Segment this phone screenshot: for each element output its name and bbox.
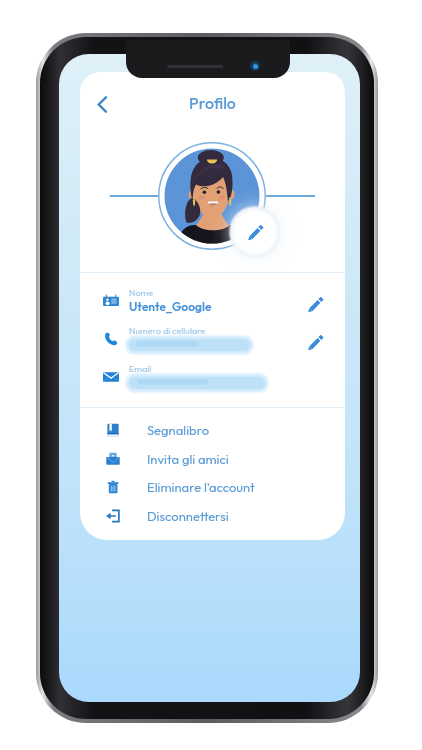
button[interactable]: Numero di cellulare <box>80 323 345 361</box>
staticText: Eliminare l'account <box>147 479 255 495</box>
button[interactable]: Nome <box>80 285 345 323</box>
staticText: Email <box>129 363 152 374</box>
button[interactable]: Profile photo <box>158 142 266 250</box>
staticText: Utente_Google <box>129 299 212 314</box>
button[interactable]: Back <box>88 90 116 118</box>
button[interactable]: Edit Numero di cellulare <box>301 328 329 356</box>
button[interactable]: Invita gli amici <box>80 447 345 475</box>
button[interactable]: Segnalibro <box>80 418 345 446</box>
staticText: Segnalibro <box>147 422 210 438</box>
button[interactable]: Disconnettersi <box>80 504 345 532</box>
staticText: Disconnettersi <box>147 508 229 524</box>
button[interactable]: Edit Nome <box>301 290 329 318</box>
staticText: Profilo <box>189 93 236 113</box>
button[interactable]: Email <box>80 361 345 399</box>
button[interactable]: Profilo <box>160 93 265 113</box>
staticText: Invita gli amici <box>147 451 229 467</box>
staticText: Numero di cellulare <box>129 325 206 336</box>
staticText: Nome <box>129 287 154 298</box>
button[interactable]: Change profile photo <box>211 188 299 276</box>
button[interactable]: Eliminare l'account <box>80 475 345 503</box>
